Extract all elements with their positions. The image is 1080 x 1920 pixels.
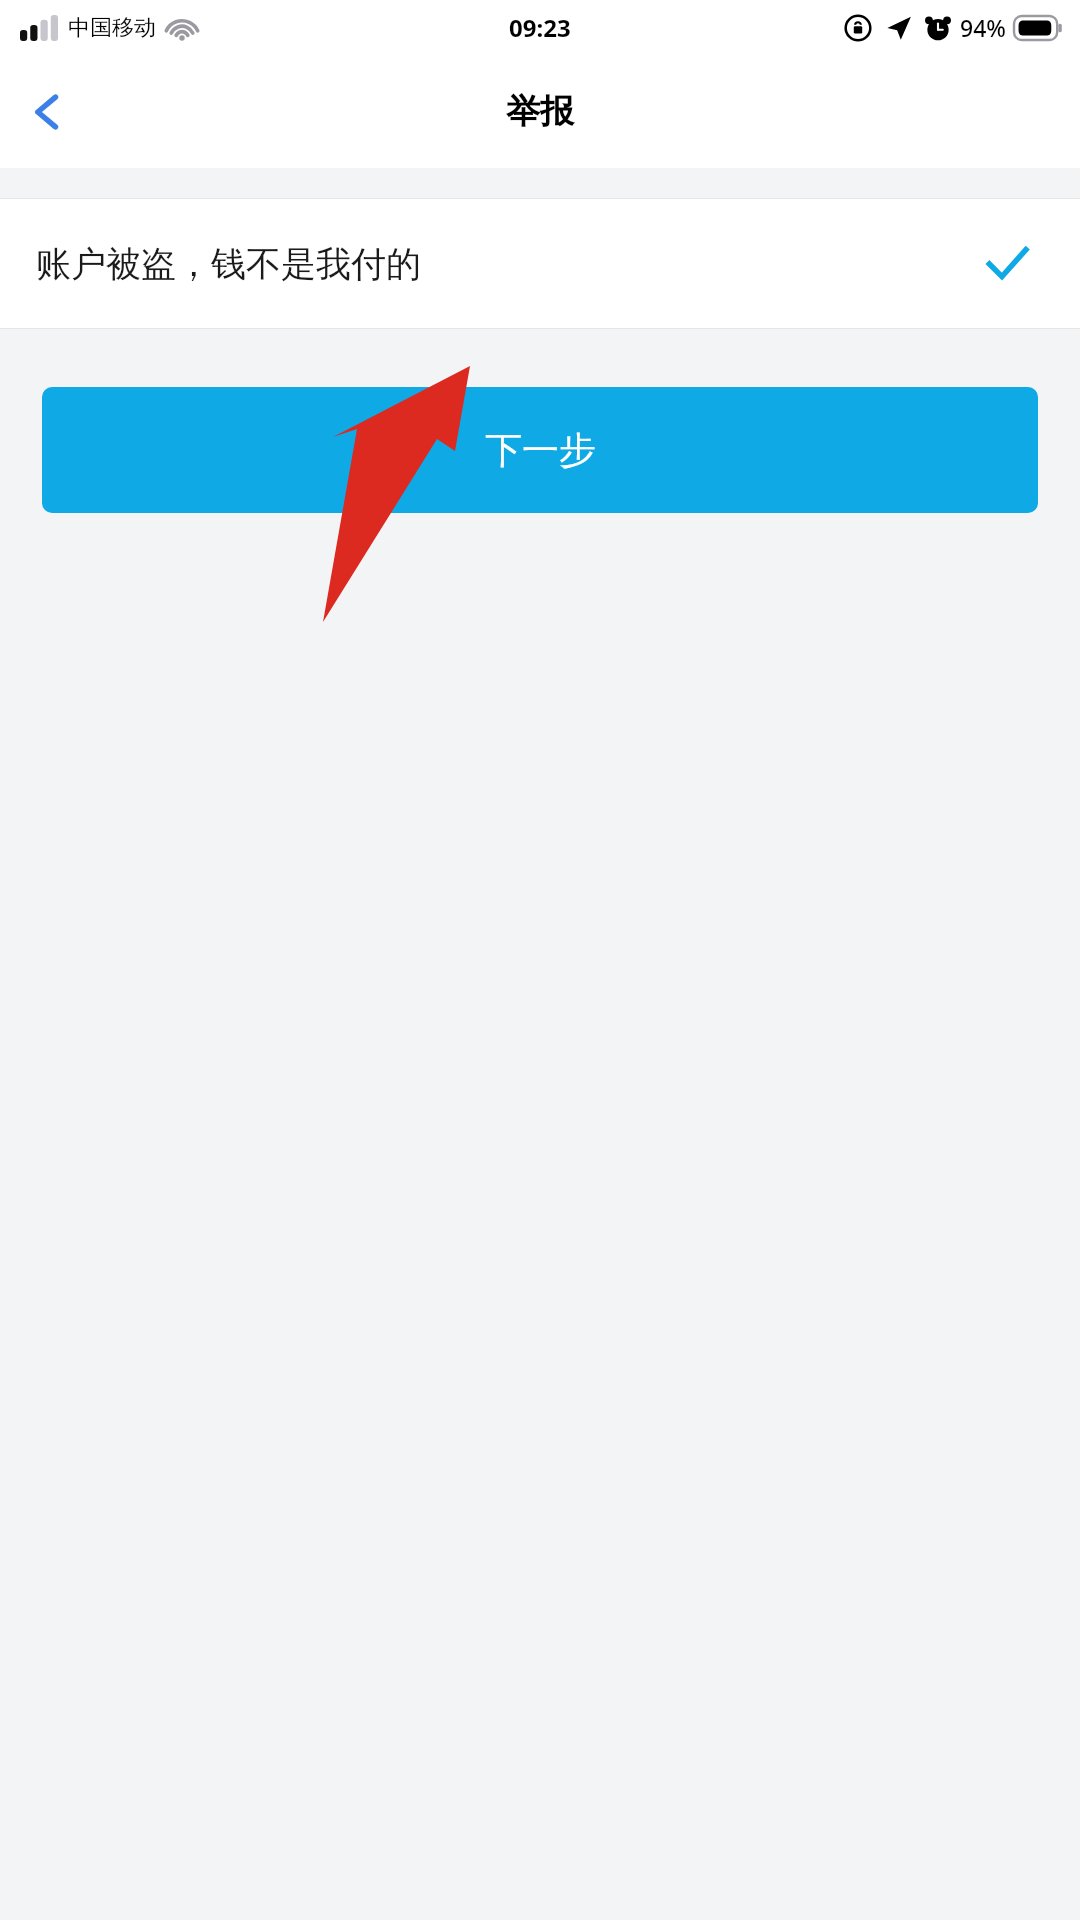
staticText: 中国移动: [68, 14, 156, 42]
button[interactable]: 账户被盗，钱不是我付的: [0, 199, 1080, 328]
staticText: 09:23: [509, 11, 571, 44]
staticText: 账户被盗，钱不是我付的: [36, 242, 421, 286]
staticText: 94%: [960, 12, 1006, 43]
staticText: 下一步: [485, 427, 596, 474]
button[interactable]: 下一步: [42, 387, 1038, 513]
staticText: 举报: [506, 90, 574, 133]
button[interactable]: 返回: [0, 64, 96, 160]
